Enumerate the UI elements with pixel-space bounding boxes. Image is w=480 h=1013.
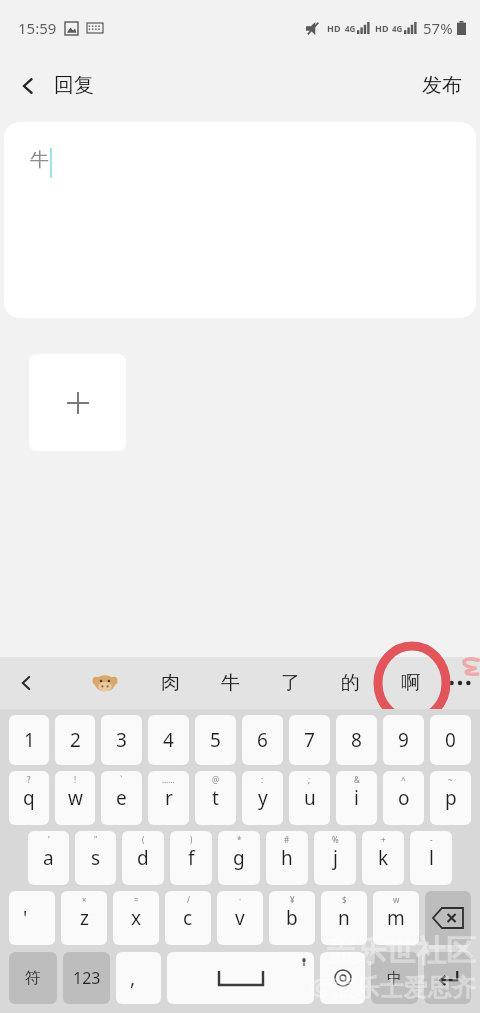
staticText: y	[258, 785, 268, 811]
button[interactable]: )	[170, 831, 212, 885]
staticText: a	[43, 845, 54, 871]
staticText: 9	[398, 727, 409, 753]
button[interactable]: (	[122, 831, 164, 885]
staticText: o	[398, 785, 410, 811]
staticText: `	[120, 774, 123, 785]
button[interactable]: #	[266, 831, 308, 885]
button[interactable]: 7	[289, 715, 330, 765]
button[interactable]	[167, 952, 314, 1004]
button[interactable]: More candidates	[443, 674, 477, 692]
other: Enter	[437, 967, 459, 989]
staticText: 中	[387, 969, 402, 988]
button[interactable]: =	[113, 891, 159, 945]
staticText: r	[165, 785, 173, 811]
button[interactable]: Add photo	[29, 354, 126, 451]
button[interactable]: :	[242, 771, 283, 825]
staticText: 盖乐世社区	[326, 932, 476, 970]
staticText: z	[80, 905, 89, 931]
button[interactable]: -	[410, 831, 452, 885]
staticText: u	[304, 785, 316, 811]
staticText: (	[142, 834, 145, 845]
button[interactable]: ·	[217, 891, 263, 945]
button[interactable]: Emoji	[92, 670, 118, 696]
button[interactable]: 4	[148, 715, 189, 765]
button[interactable]: ,	[116, 952, 161, 1004]
staticText: 4G	[392, 23, 403, 34]
staticText: @	[212, 774, 220, 785]
button[interactable]: 发布	[404, 63, 480, 108]
staticText: 7	[304, 727, 315, 753]
button[interactable]: !	[55, 771, 95, 825]
staticText: 肉	[161, 671, 180, 695]
button[interactable]: Enter	[424, 952, 471, 1004]
staticText: "	[94, 834, 98, 845]
button[interactable]: 的	[328, 657, 372, 709]
staticText: 了	[281, 671, 300, 695]
staticText: s	[91, 845, 101, 871]
button[interactable]: ?	[9, 771, 49, 825]
staticText: i	[354, 785, 359, 811]
button[interactable]: +	[362, 831, 404, 885]
button[interactable]: 123	[63, 952, 110, 1004]
button[interactable]: 3	[101, 715, 142, 765]
button[interactable]: ……	[148, 771, 189, 825]
staticText: w	[68, 785, 83, 811]
button[interactable]: *	[218, 831, 260, 885]
button[interactable]: 中	[371, 952, 418, 1004]
staticText: 符	[25, 968, 41, 988]
button[interactable]: ¥	[269, 891, 315, 945]
button[interactable]: 1	[9, 715, 49, 765]
button[interactable]: 2	[55, 715, 95, 765]
button[interactable]: Back	[0, 65, 106, 106]
staticText: !	[74, 774, 77, 785]
button[interactable]: &	[336, 771, 377, 825]
button[interactable]: 啊	[388, 657, 432, 709]
button[interactable]: '	[9, 891, 55, 945]
staticText: ?	[27, 774, 31, 785]
button[interactable]: ~	[430, 771, 471, 825]
other: Back	[18, 76, 38, 96]
button[interactable]: $	[321, 891, 367, 945]
button[interactable]: 符	[9, 952, 57, 1004]
button[interactable]: @	[195, 771, 236, 825]
button[interactable]: ^	[383, 771, 424, 825]
button[interactable]: 8	[336, 715, 377, 765]
staticText: 4G	[345, 23, 356, 34]
staticText: 回复	[54, 73, 94, 98]
staticText: l	[429, 845, 434, 871]
staticText: 的	[341, 671, 360, 695]
button[interactable]: ;	[289, 771, 330, 825]
staticText: 牛	[221, 671, 240, 695]
staticText: 15:59	[18, 18, 57, 38]
button[interactable]: Backspace	[425, 891, 471, 945]
staticText: 0	[445, 727, 456, 753]
staticText: $	[342, 894, 347, 905]
staticText: d	[137, 845, 149, 871]
button[interactable]: 牛	[4, 122, 476, 318]
button[interactable]: "	[75, 831, 116, 885]
button[interactable]: Previous	[0, 663, 52, 703]
button[interactable]: %	[314, 831, 356, 885]
button[interactable]: 5	[195, 715, 236, 765]
button[interactable]: ×	[61, 891, 107, 945]
button[interactable]: w	[373, 891, 419, 945]
staticText: p	[445, 785, 457, 811]
staticText: @盖乐士爱思齐	[310, 970, 476, 1003]
staticText: '	[23, 905, 28, 931]
button[interactable]: /	[165, 891, 211, 945]
staticText: 发布	[422, 73, 462, 98]
button[interactable]: `	[101, 771, 142, 825]
button[interactable]: 了	[268, 657, 312, 709]
staticText: ~	[448, 774, 453, 785]
staticText: )	[190, 834, 193, 845]
button[interactable]: '	[28, 831, 69, 885]
staticText: k	[378, 845, 389, 871]
button[interactable]: 9	[383, 715, 424, 765]
button[interactable]: 0	[430, 715, 471, 765]
button[interactable]: 肉	[148, 657, 192, 709]
button[interactable]: 6	[242, 715, 283, 765]
staticText: 6	[257, 727, 268, 753]
button[interactable]: 牛	[208, 657, 252, 709]
staticText: +	[381, 834, 386, 845]
button[interactable]: At sign	[320, 952, 365, 1004]
